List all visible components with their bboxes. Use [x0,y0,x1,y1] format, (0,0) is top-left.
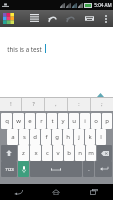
staticText: ? [32,101,35,108]
staticText: y [61,117,65,125]
button[interactable]: ! [0,98,21,111]
button[interactable]: u [69,113,79,129]
button[interactable]: . [83,161,94,177]
staticText: ?123 [5,167,14,172]
staticText: l [100,133,102,141]
button[interactable]: a [7,129,18,145]
staticText: n [78,149,82,157]
staticText: i [84,117,86,125]
button[interactable]: ?123 [1,161,17,177]
button[interactable]: More options [101,10,111,27]
button[interactable]: q [1,113,12,129]
button[interactable]: m [86,145,96,161]
button[interactable]: Shift [1,145,17,161]
staticText: d [33,133,37,141]
staticText: this is a test [7,45,42,53]
staticText: z [22,149,25,157]
button[interactable]: l [96,129,106,145]
staticText: c [46,149,49,157]
staticText: t [51,117,54,125]
button[interactable]: p [102,113,112,129]
button[interactable]: Space [30,161,82,177]
staticText: w [16,117,21,125]
button[interactable]: i [80,113,90,129]
button[interactable]: j [74,129,84,145]
staticText: k [88,133,92,141]
staticText: s [23,133,26,141]
button[interactable]: y [58,113,68,129]
button[interactable]: x [30,145,41,161]
staticText: u [72,117,76,125]
staticText: ! [10,101,12,108]
staticText: p [105,117,109,125]
button[interactable]: Backspace [97,145,112,161]
button[interactable]: App icon [2,12,15,25]
button[interactable]: Enter [95,161,112,177]
staticText: e [28,117,32,125]
staticText: q [5,117,9,125]
staticText: ; [101,101,103,108]
button[interactable]: , [45,98,67,111]
staticText: j [78,133,80,141]
staticText: h [66,133,70,141]
button[interactable]: g [52,129,62,145]
button[interactable]: w [13,113,24,129]
staticText: v [56,149,60,157]
button[interactable]: n [75,145,85,161]
button[interactable]: ; [91,98,113,111]
button[interactable]: Redo [63,10,77,27]
button[interactable]: Voice input [18,161,29,177]
button[interactable]: Recents [75,184,113,200]
staticText: f [45,133,48,141]
button[interactable]: o [91,113,101,129]
button[interactable]: t [47,113,57,129]
staticText: m [88,149,94,157]
button[interactable]: v [53,145,63,161]
button[interactable]: Back [0,184,37,200]
button[interactable]: f [41,129,51,145]
staticText: 5:04 AM [94,2,112,8]
button[interactable]: Home [37,184,75,200]
button[interactable]: c [42,145,52,161]
staticText: a [11,133,15,141]
button[interactable]: s [19,129,29,145]
button[interactable]: Undo [45,10,59,27]
button[interactable]: Keyboard [82,10,96,27]
button[interactable]: List [27,10,41,27]
staticText: b [67,149,71,157]
button[interactable]: d [30,129,40,145]
button[interactable]: h [63,129,73,145]
staticText: g [55,133,59,141]
staticText: r [40,117,43,125]
staticText: : [78,101,80,108]
button[interactable]: ? [22,98,44,111]
button[interactable]: e [25,113,35,129]
staticText: o [94,117,98,125]
button[interactable]: b [64,145,74,161]
button[interactable]: k [85,129,95,145]
button[interactable]: z [18,145,29,161]
staticText: . [88,166,90,173]
staticText: , [55,101,57,108]
button[interactable]: r [36,113,46,129]
staticText: x [34,149,38,157]
